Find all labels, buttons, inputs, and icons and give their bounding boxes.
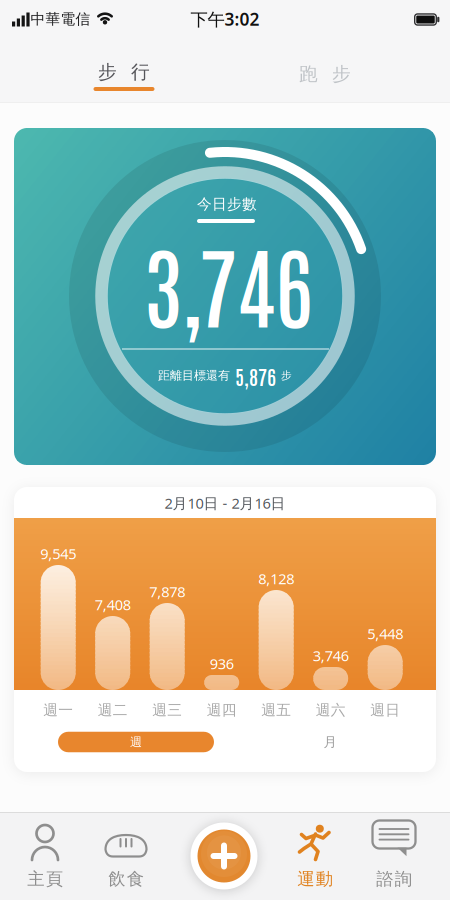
staticText: 週六	[316, 701, 346, 719]
button[interactable]: 月	[290, 730, 370, 754]
staticText: 月	[323, 734, 336, 750]
staticText: 今日步數	[197, 195, 257, 213]
staticText: 週	[130, 735, 142, 749]
staticText: 週三	[152, 701, 182, 719]
staticText: 週一	[43, 701, 73, 719]
staticText: 飲食	[108, 868, 144, 890]
staticText: 週二	[98, 701, 128, 719]
staticText: 8,128	[258, 569, 294, 588]
staticText: 7,878	[149, 582, 185, 601]
staticText: 步 行	[98, 60, 150, 83]
staticText: 週四	[207, 701, 237, 719]
staticText: 距離目標還有	[158, 368, 230, 383]
staticText: 中華電信	[30, 10, 90, 28]
staticText: 2月10日 - 2月16日	[164, 493, 285, 513]
staticText: 3,746	[313, 646, 349, 665]
staticText: 諮詢	[376, 868, 412, 890]
button[interactable]: 諮詢	[354, 812, 434, 900]
button[interactable]: 週	[58, 730, 214, 754]
staticText: 5,448	[367, 624, 403, 643]
staticText: 5,876	[235, 362, 276, 389]
staticText: 運動	[297, 868, 333, 890]
staticText: 跑 步	[299, 62, 351, 85]
button[interactable]: 步 行	[64, 45, 184, 103]
staticText: 週五	[261, 701, 291, 719]
button[interactable]: 主頁	[5, 812, 85, 900]
staticText: 下午3:02	[190, 7, 259, 30]
staticText: 7,408	[95, 595, 131, 614]
button[interactable]: 飲食	[86, 812, 166, 900]
staticText: 步	[281, 369, 292, 382]
staticText: 936	[210, 654, 234, 673]
staticText: 3,746	[144, 225, 313, 340]
staticText: 主頁	[27, 868, 63, 890]
staticText: 9,545	[40, 544, 76, 563]
staticText: 週日	[370, 701, 400, 719]
button[interactable]: 跑 步	[265, 45, 385, 103]
button[interactable]: 運動	[275, 812, 355, 900]
button[interactable]: 新增	[184, 816, 264, 896]
